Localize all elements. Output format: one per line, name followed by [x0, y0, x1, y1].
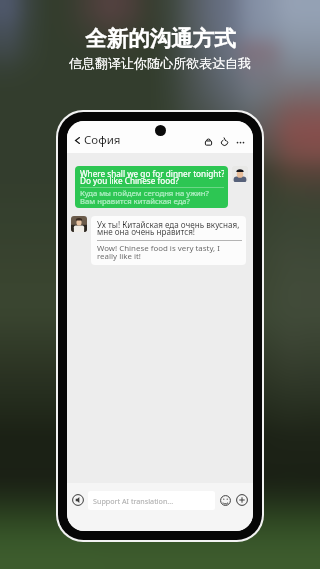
button[interactable]: Ух ты! Китайская еда очень вкусная, мне …: [91, 216, 246, 265]
staticText: Wow! Chinese food is very tasty, I reall…: [97, 243, 220, 261]
staticText: Where shall we go for dinner tonight? Do…: [80, 168, 224, 186]
button[interactable]: Where shall we go for dinner tonight? Do…: [75, 166, 228, 208]
button[interactable]: Emoji: [220, 495, 231, 506]
button[interactable]: Lock: [202, 135, 215, 148]
button[interactable]: София: [67, 129, 125, 153]
staticText: Ух ты! Китайская еда очень вкусная, мне …: [97, 219, 240, 237]
button[interactable]: Add: [236, 494, 248, 506]
staticText: 信息翻译让你随心所欲表达自我: [69, 55, 251, 71]
staticText: 全新的沟通方式: [85, 25, 236, 52]
button[interactable]: Like: [218, 135, 231, 148]
staticText: Support AI translation...: [93, 496, 174, 506]
button[interactable]: Support AI translation...: [88, 491, 215, 510]
staticText: Куда мы пойдем сегодня на ужин? Вам нрав…: [80, 188, 209, 206]
button[interactable]: Voice input: [72, 494, 84, 506]
button[interactable]: More: [234, 135, 247, 148]
staticText: София: [84, 132, 121, 148]
